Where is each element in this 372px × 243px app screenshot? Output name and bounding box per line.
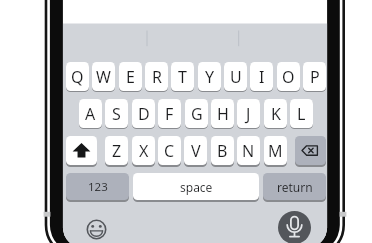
staticText: R bbox=[152, 66, 162, 88]
staticText: D bbox=[138, 103, 150, 125]
button[interactable]: K bbox=[264, 99, 287, 128]
button[interactable]: R bbox=[145, 62, 168, 91]
staticText: return bbox=[277, 179, 313, 195]
button[interactable]: F bbox=[158, 99, 181, 128]
staticText: J bbox=[246, 103, 251, 125]
button[interactable]: Y bbox=[198, 62, 221, 91]
button[interactable]: 123 bbox=[66, 173, 129, 200]
staticText: L bbox=[297, 103, 306, 125]
button[interactable]: C bbox=[158, 136, 181, 165]
staticText: C bbox=[164, 140, 175, 162]
button[interactable]: J bbox=[237, 99, 260, 128]
button[interactable]: B bbox=[211, 136, 234, 165]
button[interactable]: V bbox=[184, 136, 207, 165]
staticText: space bbox=[180, 179, 213, 195]
staticText: B bbox=[217, 140, 228, 162]
button[interactable]: P bbox=[303, 62, 326, 91]
staticText: W bbox=[96, 66, 111, 88]
button[interactable]: N bbox=[237, 136, 260, 165]
button[interactable]: U bbox=[224, 62, 247, 91]
staticText: U bbox=[230, 66, 242, 88]
button[interactable]: I bbox=[250, 62, 273, 91]
staticText: T bbox=[178, 66, 187, 88]
button[interactable] bbox=[85, 218, 108, 241]
button[interactable]: Q bbox=[66, 62, 89, 91]
button[interactable]: L bbox=[290, 99, 313, 128]
button[interactable]: A bbox=[79, 99, 102, 128]
button[interactable] bbox=[295, 136, 326, 165]
button[interactable]: H bbox=[211, 99, 234, 128]
button[interactable]: X bbox=[132, 136, 155, 165]
staticText: O bbox=[282, 66, 295, 88]
button[interactable]: S bbox=[105, 99, 128, 128]
staticText: K bbox=[271, 103, 281, 125]
button[interactable]: space bbox=[133, 173, 259, 200]
staticText: N bbox=[242, 140, 255, 162]
staticText: I bbox=[259, 66, 265, 88]
staticText: H bbox=[217, 103, 229, 125]
button[interactable]: O bbox=[277, 62, 300, 91]
staticText: 123 bbox=[88, 179, 108, 195]
staticText: M bbox=[268, 140, 283, 162]
button[interactable]: T bbox=[171, 62, 194, 91]
staticText: E bbox=[126, 66, 135, 88]
staticText: A bbox=[85, 103, 96, 125]
button[interactable]: Z bbox=[105, 136, 128, 165]
button[interactable] bbox=[278, 211, 311, 243]
staticText: F bbox=[165, 103, 174, 125]
staticText: Y bbox=[205, 66, 215, 88]
button[interactable]: D bbox=[132, 99, 155, 128]
staticText: P bbox=[310, 66, 320, 88]
staticText: V bbox=[191, 140, 201, 162]
button[interactable]: E bbox=[119, 62, 142, 91]
button[interactable] bbox=[66, 136, 97, 165]
button[interactable]: W bbox=[92, 62, 115, 91]
button[interactable]: M bbox=[264, 136, 287, 165]
staticText: G bbox=[191, 103, 203, 125]
staticText: Q bbox=[71, 66, 84, 88]
staticText: Z bbox=[112, 140, 122, 162]
button[interactable]: G bbox=[185, 99, 208, 128]
staticText: X bbox=[139, 140, 149, 162]
button[interactable]: return bbox=[263, 173, 326, 200]
staticText: S bbox=[112, 103, 121, 125]
